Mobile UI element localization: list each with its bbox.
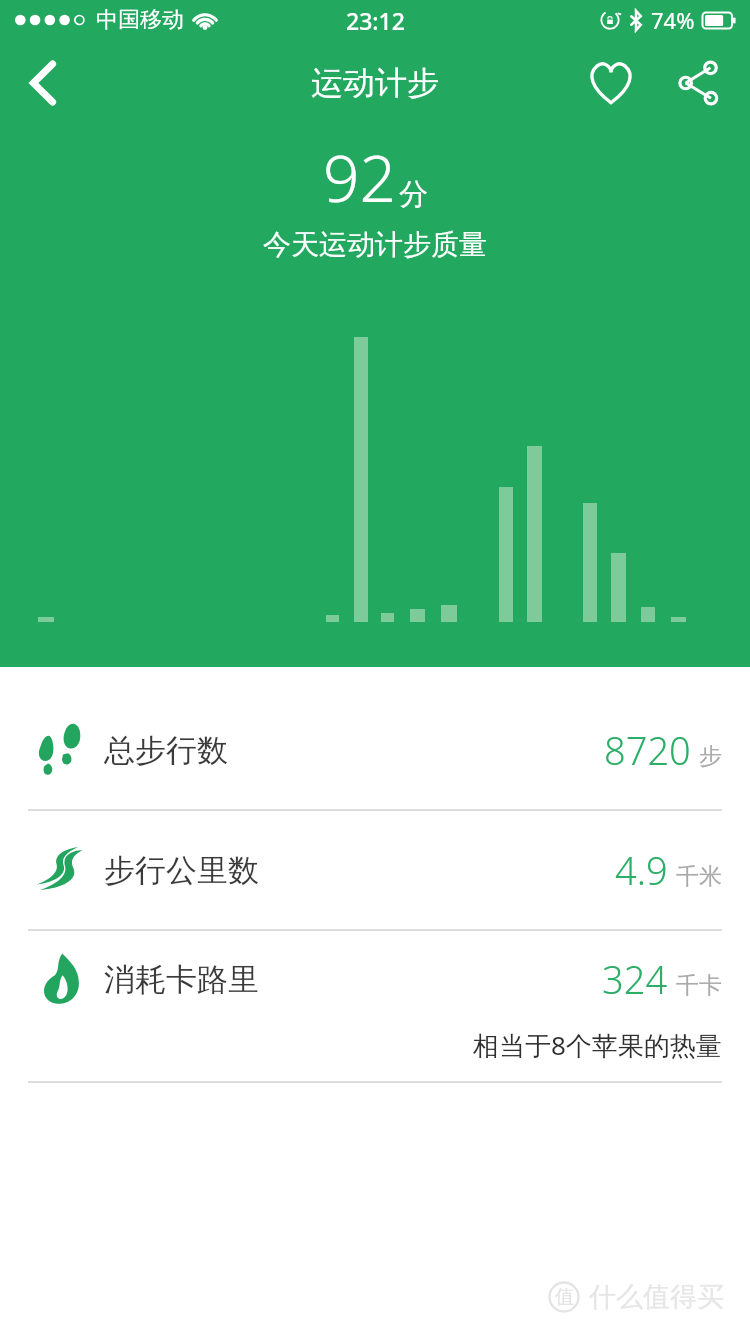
staticText: 相当于8个苹果的热量 — [473, 1027, 722, 1063]
staticText: 千米 — [676, 862, 722, 891]
staticText: 324 — [602, 953, 668, 1005]
staticText: 今天运动计步质量 — [263, 227, 487, 262]
staticText: 千卡 — [676, 971, 722, 1000]
staticText: 运动计步 — [311, 63, 439, 103]
staticText: 步 — [699, 742, 722, 771]
button[interactable]: Back — [8, 48, 78, 118]
button[interactable]: 消耗卡路里 — [0, 931, 750, 1081]
button[interactable]: Favorite — [576, 48, 646, 118]
staticText: 74% — [651, 5, 695, 35]
staticText: 4.9 — [615, 844, 668, 896]
staticText: 分 — [399, 176, 428, 213]
staticText: 步行公里数 — [104, 851, 259, 890]
staticText: 总步行数 — [104, 731, 228, 770]
button[interactable]: 步行公里数 — [0, 811, 750, 929]
staticText: 值 — [555, 1285, 574, 1309]
staticText: 消耗卡路里 — [104, 960, 259, 999]
staticText: 92 — [323, 134, 397, 221]
staticText: 8720 — [604, 724, 691, 776]
button[interactable]: 总步行数 — [0, 691, 750, 809]
staticText: 中国移动 — [96, 6, 184, 34]
staticText: 什么值得买 — [589, 1280, 724, 1314]
button[interactable]: Share — [664, 48, 734, 118]
staticText: 23:12 — [346, 5, 405, 36]
